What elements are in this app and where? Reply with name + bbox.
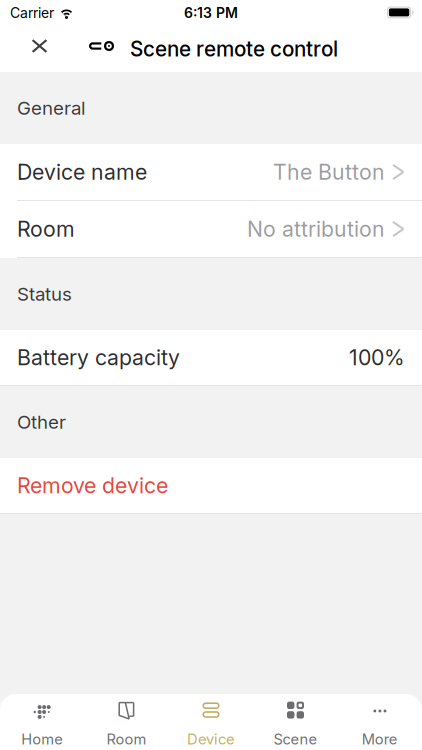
button[interactable]: Room (0, 201, 422, 258)
staticText: Status (17, 283, 72, 305)
button[interactable]: Home (0, 694, 84, 750)
staticText: Scene remote control (130, 36, 338, 61)
staticText: 6:13 PM (184, 4, 238, 21)
button[interactable]: Scene (253, 694, 338, 750)
staticText: Room (17, 216, 75, 242)
button[interactable]: Close (0, 26, 73, 72)
staticText: Home (21, 730, 63, 748)
staticText: More (362, 730, 398, 748)
staticText: Room (107, 730, 147, 748)
staticText: Device (187, 730, 235, 748)
staticText: Other (17, 411, 66, 433)
button[interactable]: Remove device (0, 458, 422, 514)
staticText: No attribution (247, 216, 385, 242)
staticText: Remove device (17, 473, 168, 498)
staticText: Carrier (10, 4, 54, 21)
button[interactable]: Room (84, 694, 169, 750)
staticText: Device name (17, 159, 147, 185)
staticText: Battery capacity (17, 345, 180, 370)
button[interactable]: More (338, 694, 422, 750)
staticText: General (17, 97, 86, 119)
button[interactable]: Battery capacity (0, 330, 422, 386)
button[interactable]: Device (169, 694, 253, 750)
staticText: The Button (273, 159, 385, 185)
staticText: 100% (349, 345, 405, 370)
staticText: Scene (273, 730, 317, 748)
button[interactable]: Device name (0, 144, 422, 201)
